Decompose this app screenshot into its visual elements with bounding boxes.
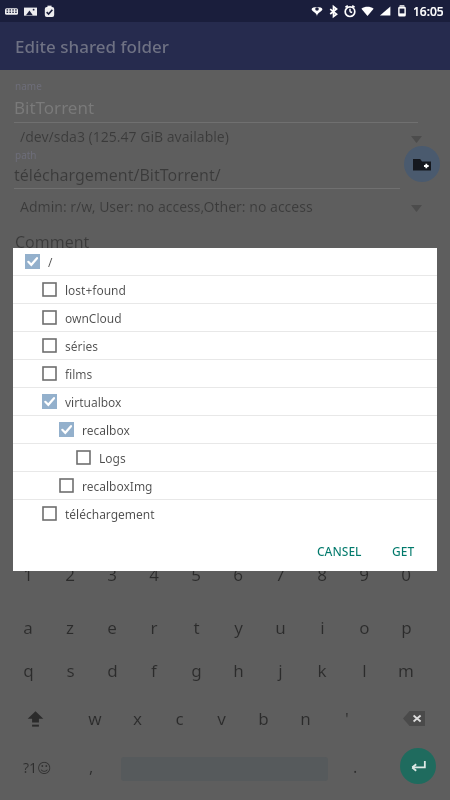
button[interactable]: virtualbox <box>13 388 437 415</box>
staticText: name <box>15 79 42 93</box>
button[interactable]: 3 <box>97 559 127 589</box>
staticText: 5 <box>191 563 201 586</box>
button[interactable]: b <box>248 703 278 733</box>
button[interactable]: w <box>80 703 110 733</box>
staticText: t <box>193 616 200 639</box>
button[interactable]: recalbox <box>13 416 437 443</box>
staticText: h <box>233 659 244 682</box>
staticText: , <box>89 756 94 778</box>
staticText: x <box>133 707 142 730</box>
button[interactable]: 1 <box>13 559 43 589</box>
staticText: 6 <box>233 563 243 586</box>
staticText: v <box>217 707 226 730</box>
button[interactable]: 9 <box>349 559 379 589</box>
button[interactable]: g <box>181 655 211 685</box>
button[interactable]: Enter <box>400 748 436 784</box>
button[interactable]: Shift <box>20 703 50 733</box>
staticText: ownCloud <box>65 310 122 326</box>
button[interactable]: p <box>391 612 421 642</box>
button[interactable]: 4 <box>139 559 169 589</box>
staticText: Admin: r/w, User: no access,Other: no ac… <box>20 197 313 216</box>
staticText: films <box>65 366 93 382</box>
button[interactable]: , <box>78 752 104 782</box>
staticText: r <box>150 616 158 639</box>
button[interactable]: Create folder <box>404 146 440 182</box>
button[interactable]: o <box>349 612 379 642</box>
staticText: BitTorrent <box>14 96 95 119</box>
button[interactable]: 7 <box>265 559 295 589</box>
staticText: o <box>359 616 370 639</box>
button[interactable]: séries <box>13 332 437 359</box>
staticText: 4 <box>149 563 159 586</box>
staticText: n <box>300 707 311 730</box>
staticText: s <box>66 659 75 682</box>
button[interactable]: recalboxImg <box>13 472 437 499</box>
staticText: w <box>88 707 102 730</box>
button[interactable]: lost+found <box>13 276 437 303</box>
button[interactable]: m <box>391 655 421 685</box>
button[interactable]: k <box>307 655 337 685</box>
button[interactable]: Logs <box>13 444 437 471</box>
staticText: recalboxImg <box>82 478 153 494</box>
button[interactable]: 2 <box>55 559 85 589</box>
button[interactable]: d <box>97 655 127 685</box>
button[interactable]: j <box>265 655 295 685</box>
staticText: k <box>317 659 327 682</box>
button[interactable]: films <box>13 360 437 387</box>
staticText: GET <box>392 543 415 559</box>
staticText: 9 <box>359 563 369 586</box>
button[interactable]: / <box>13 248 437 275</box>
button[interactable]: u <box>265 612 295 642</box>
staticText: l <box>362 659 367 682</box>
staticText: téléchargement/BitTorrent/ <box>14 164 221 186</box>
button[interactable]: i <box>307 612 337 642</box>
staticText: i <box>320 616 325 639</box>
staticText: e <box>107 616 117 639</box>
button[interactable]: 0 <box>391 559 421 589</box>
button[interactable]: y <box>223 612 253 642</box>
staticText: 16:05 <box>413 3 444 19</box>
button[interactable]: r <box>139 612 169 642</box>
button[interactable]: GET <box>384 537 423 565</box>
button[interactable]: f <box>139 655 169 685</box>
button[interactable]: h <box>223 655 253 685</box>
button[interactable]: CANSEL <box>309 537 370 565</box>
button[interactable]: a <box>13 612 43 642</box>
button[interactable]: ?1☺ <box>14 752 60 782</box>
button[interactable]: t <box>181 612 211 642</box>
staticText: m <box>398 659 414 682</box>
staticText: d <box>107 659 118 682</box>
staticText: lost+found <box>65 282 126 298</box>
staticText: u <box>275 616 286 639</box>
staticText: / <box>48 254 53 270</box>
button[interactable]: n <box>290 703 320 733</box>
button[interactable]: téléchargement <box>13 500 437 527</box>
button[interactable]: 5 <box>181 559 211 589</box>
staticText: path <box>15 148 37 162</box>
staticText: CANSEL <box>317 543 362 559</box>
button[interactable]: 6 <box>223 559 253 589</box>
button[interactable]: e <box>97 612 127 642</box>
button[interactable]: ownCloud <box>13 304 437 331</box>
button[interactable]: 8 <box>307 559 337 589</box>
button[interactable]: v <box>206 703 236 733</box>
button[interactable]: l <box>349 655 379 685</box>
staticText: 1 <box>23 563 33 586</box>
staticText: . <box>353 756 358 778</box>
staticText: Comment <box>15 231 90 253</box>
staticText: ?1☺ <box>23 758 52 777</box>
staticText: g <box>191 659 202 682</box>
button[interactable]: z <box>55 612 85 642</box>
button[interactable]: s <box>55 655 85 685</box>
staticText: 3 <box>107 563 117 586</box>
button[interactable]: q <box>13 655 43 685</box>
button[interactable]: x <box>122 703 152 733</box>
staticText: virtualbox <box>65 394 122 410</box>
button[interactable]: c <box>164 703 194 733</box>
staticText: j <box>278 659 283 682</box>
button[interactable]: Backspace <box>398 703 430 733</box>
staticText: y <box>234 616 243 639</box>
